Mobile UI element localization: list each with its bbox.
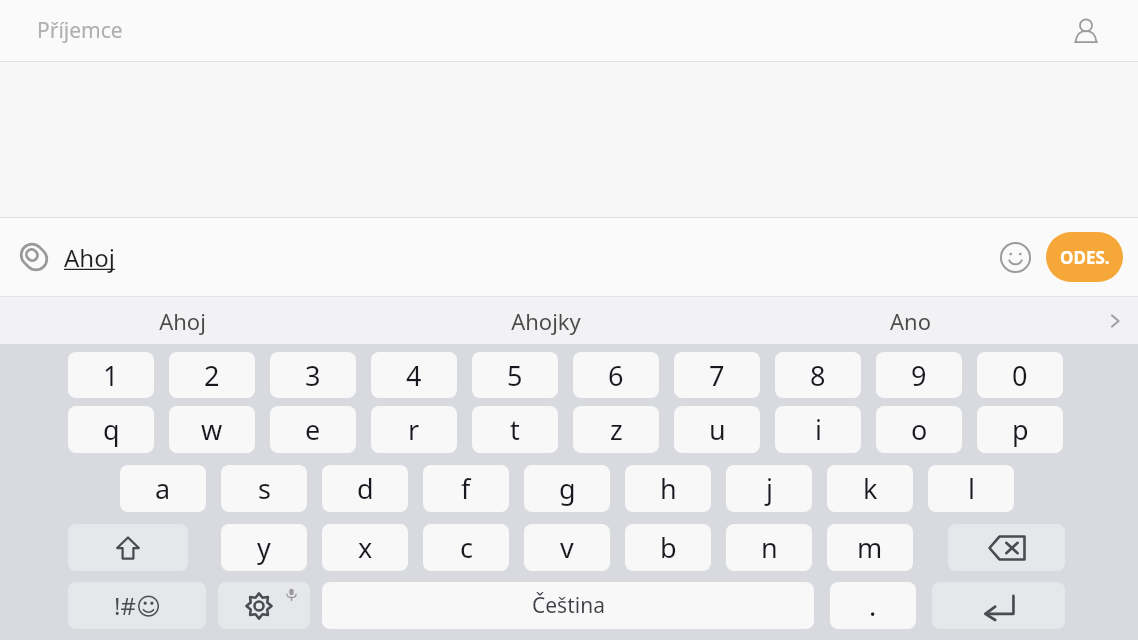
button[interactable]: Enter	[932, 582, 1065, 629]
staticText: Čeština	[532, 591, 605, 620]
staticText: .	[869, 587, 877, 624]
button[interactable]: 2	[169, 352, 255, 398]
staticText: p	[1012, 411, 1029, 448]
staticText: x	[358, 529, 373, 566]
button[interactable]: p	[977, 406, 1063, 453]
staticText: a	[155, 470, 171, 507]
button[interactable]: !#☺	[68, 582, 206, 629]
button[interactable]: .	[830, 582, 916, 629]
staticText: g	[559, 470, 576, 507]
button[interactable]: i	[775, 406, 861, 453]
button[interactable]: n	[726, 524, 812, 571]
staticText: Ahoj	[159, 306, 206, 336]
button[interactable]: 0	[977, 352, 1063, 398]
button[interactable]: z	[573, 406, 659, 453]
button[interactable]: 3	[270, 352, 356, 398]
button[interactable]: k	[827, 465, 913, 512]
button[interactable]: l	[928, 465, 1014, 512]
staticText: 8	[810, 357, 826, 394]
staticText: w	[201, 411, 223, 448]
button[interactable]: y	[221, 524, 307, 571]
staticText: b	[660, 529, 677, 566]
button[interactable]: ODES.	[1046, 232, 1123, 282]
button[interactable]: a	[120, 465, 206, 512]
staticText: j	[766, 470, 773, 507]
button[interactable]: m	[827, 524, 913, 571]
staticText: !#☺	[114, 589, 161, 622]
staticText: k	[863, 470, 878, 507]
button[interactable]: v	[524, 524, 610, 571]
button[interactable]: Ahoj	[0, 297, 364, 344]
button[interactable]: More suggestions	[1092, 297, 1138, 344]
staticText: c	[460, 529, 473, 566]
staticText: 5	[507, 357, 523, 394]
staticText: 2	[204, 357, 220, 394]
button[interactable]: Backspace	[948, 524, 1065, 571]
button[interactable]: c	[423, 524, 509, 571]
button[interactable]: Ahojky	[364, 297, 728, 344]
button[interactable]: g	[524, 465, 610, 512]
button[interactable]: o	[876, 406, 962, 453]
staticText: Ahojky	[511, 306, 581, 336]
staticText: ODES.	[1060, 246, 1110, 269]
button[interactable]: Add recipient from contacts	[1064, 9, 1108, 53]
button[interactable]: w	[169, 406, 255, 453]
staticText: q	[103, 411, 120, 448]
staticText: o	[911, 411, 928, 448]
button[interactable]: 7	[674, 352, 760, 398]
button[interactable]: j	[726, 465, 812, 512]
button[interactable]: h	[625, 465, 711, 512]
staticText: d	[357, 470, 374, 507]
button[interactable]: 8	[775, 352, 861, 398]
button[interactable]: 4	[371, 352, 457, 398]
staticText: u	[709, 411, 726, 448]
button[interactable]: r	[371, 406, 457, 453]
button[interactable]: d	[322, 465, 408, 512]
staticText: Ano	[890, 306, 931, 336]
staticText: 0	[1012, 357, 1028, 394]
button[interactable]: x	[322, 524, 408, 571]
staticText: 9	[911, 357, 927, 394]
staticText: 7	[709, 357, 725, 394]
button[interactable]: s	[221, 465, 307, 512]
button[interactable]: 5	[472, 352, 558, 398]
staticText: h	[660, 470, 677, 507]
staticText: z	[610, 411, 623, 448]
staticText: l	[968, 470, 975, 507]
button[interactable]: e	[270, 406, 356, 453]
button[interactable]: Insert emoji	[992, 234, 1038, 280]
staticText: 1	[103, 357, 119, 394]
button[interactable]: 1	[68, 352, 154, 398]
staticText: f	[461, 470, 471, 507]
button[interactable]: 9	[876, 352, 962, 398]
button[interactable]: q	[68, 406, 154, 453]
button[interactable]: Čeština	[322, 582, 814, 629]
staticText: t	[510, 411, 520, 448]
button[interactable]: u	[674, 406, 760, 453]
staticText: 6	[608, 357, 624, 394]
button[interactable]: Shift	[68, 524, 188, 571]
button[interactable]: Attach file	[8, 231, 60, 283]
button[interactable]: t	[472, 406, 558, 453]
staticText: e	[305, 411, 321, 448]
staticText: 4	[406, 357, 422, 394]
button[interactable]: 6	[573, 352, 659, 398]
button[interactable]: f	[423, 465, 509, 512]
staticText: m	[857, 529, 883, 566]
staticText: 3	[305, 357, 321, 394]
staticText: i	[815, 411, 822, 448]
button[interactable]: b	[625, 524, 711, 571]
staticText: s	[258, 470, 271, 507]
staticText: y	[257, 529, 271, 566]
staticText: n	[761, 529, 778, 566]
button[interactable]: Ano	[728, 297, 1092, 344]
staticText: v	[560, 529, 574, 566]
staticText: Příjemce	[37, 16, 123, 45]
staticText: r	[408, 411, 420, 448]
button[interactable]: Keyboard settings	[218, 582, 310, 629]
staticText: Ahoj	[64, 241, 115, 274]
